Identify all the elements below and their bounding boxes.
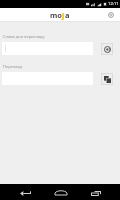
staticText: Переклад: [3, 64, 22, 69]
staticText: mo: [50, 10, 62, 20]
staticText: a: [65, 10, 70, 20]
button[interactable]: Home: [40, 184, 80, 200]
staticText: j: [62, 10, 65, 20]
staticText: 12:11: [108, 1, 119, 7]
button[interactable]: Copy: [101, 73, 113, 85]
button[interactable]: Back: [0, 184, 40, 200]
button[interactable]: Recents: [80, 184, 120, 200]
staticText: Слова для перекладу: [3, 34, 45, 39]
button[interactable]: Info: [104, 8, 117, 21]
button[interactable]: Speak: [101, 43, 113, 55]
